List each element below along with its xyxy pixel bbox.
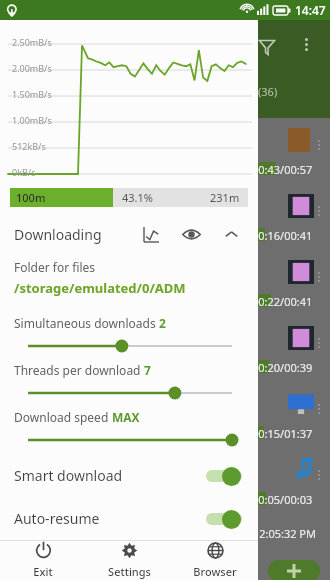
staticText: 00:20/00:39 — [252, 360, 313, 375]
button[interactable]: Visibility — [176, 219, 206, 249]
button[interactable]: Threads per download — [0, 354, 258, 401]
staticText: 1.50mB/s — [12, 88, 52, 100]
staticText: 512kB/s — [12, 140, 46, 152]
staticText: Download speed — [14, 409, 112, 425]
staticText: 100m — [16, 190, 46, 205]
staticText: 2 — [159, 315, 166, 331]
staticText: 231m — [210, 190, 240, 205]
button[interactable]: Graph — [136, 219, 166, 249]
other: Filter — [258, 38, 276, 56]
staticText: (36) — [258, 84, 278, 99]
button[interactable]: Simultaneous downloads — [0, 307, 258, 354]
button[interactable]: Folder for files — [0, 259, 258, 297]
staticText: 00:05/00:03 — [252, 492, 313, 507]
staticText: Folder for files — [14, 259, 96, 275]
staticText: Browser — [193, 564, 237, 579]
staticText: Auto-resume — [14, 509, 100, 528]
staticText: 00:15/01:37 — [252, 426, 313, 441]
staticText: 00:16/00:41 — [252, 228, 313, 243]
staticText: 2.50mB/s — [12, 36, 52, 48]
staticText: Smart download — [14, 466, 123, 485]
button[interactable]: Auto-resume — [0, 497, 258, 540]
staticText: MAX — [112, 409, 140, 425]
button[interactable]: Smart download — [0, 454, 258, 497]
staticText: Threads per download — [14, 362, 144, 378]
button[interactable]: Collapse — [216, 219, 246, 249]
button[interactable]: Download speed — [0, 401, 258, 448]
staticText: 1.00mB/s — [12, 114, 52, 126]
staticText: Exit — [33, 564, 53, 579]
button[interactable]: Browser — [172, 541, 258, 580]
staticText: 00:22/00:41 — [252, 294, 313, 309]
staticText: 2.00mB/s — [12, 62, 52, 74]
staticText: 00:43/00:57 — [252, 162, 313, 177]
staticText: 7 — [144, 362, 151, 378]
staticText: 43.1% — [122, 190, 153, 205]
staticText: /storage/emulated/0/ADM — [14, 279, 186, 297]
staticText: Simultaneous downloads — [14, 315, 159, 331]
staticText: Settings — [108, 564, 151, 579]
staticText: Downloading — [14, 225, 102, 244]
staticText: 0kB/s — [12, 166, 36, 178]
staticText: 7 2:05:32 PM — [250, 526, 316, 541]
button[interactable]: Exit — [0, 541, 86, 580]
button[interactable]: Add download — [268, 560, 320, 580]
button[interactable]: Settings — [86, 541, 172, 580]
staticText: 14:47 — [295, 2, 326, 18]
